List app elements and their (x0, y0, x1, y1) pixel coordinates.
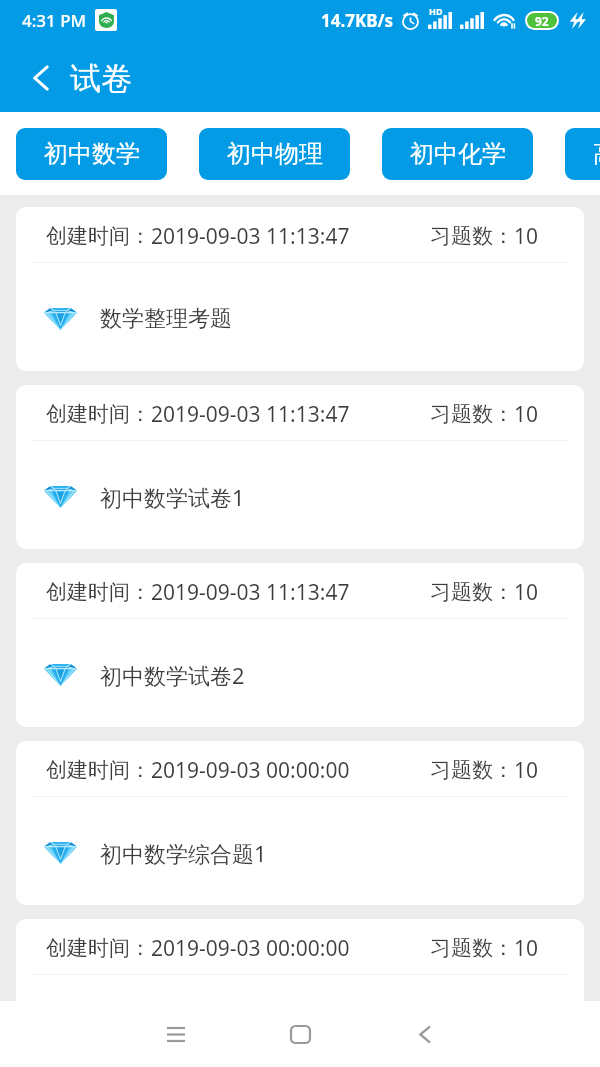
staticText: 创建时间： (46, 401, 151, 427)
button[interactable]: 创建时间： (16, 741, 584, 905)
staticText: 初中数学试卷2 (100, 660, 245, 690)
staticText: 10 (514, 400, 539, 429)
button[interactable]: 创建时间： (16, 385, 584, 549)
staticText: 初中化学 (410, 139, 506, 169)
staticText: 2019-09-03 11:13:47 (151, 578, 350, 607)
button[interactable]: 创建时间： (16, 207, 584, 371)
staticText: 数学整理考题 (100, 305, 232, 333)
staticText: 创建时间： (46, 579, 151, 605)
staticText: 习题数： (430, 579, 514, 605)
staticText: 92 (535, 13, 549, 28)
button[interactable]: 高中数学 (565, 128, 600, 180)
staticText: 2019-09-03 00:00:00 (151, 934, 350, 963)
button[interactable]: 创建时间： (16, 563, 584, 727)
staticText: 初中数学 (44, 139, 140, 169)
staticText: 14.7KB/s (321, 9, 394, 32)
button[interactable]: Back (20, 54, 60, 102)
staticText: 习题数： (430, 757, 514, 783)
button[interactable]: 初中化学 (382, 128, 533, 180)
button[interactable]: 初中数学 (16, 128, 167, 180)
staticText: 高中数学 (593, 139, 600, 169)
staticText: 10 (514, 756, 539, 785)
staticText: 初中物理 (227, 139, 323, 169)
button[interactable]: 初中物理 (199, 128, 350, 180)
staticText: 10 (514, 222, 539, 251)
staticText: 10 (514, 578, 539, 607)
button[interactable]: 创建时间： (16, 919, 584, 1001)
button[interactable]: Back (389, 1006, 459, 1062)
staticText: 创建时间： (46, 935, 151, 961)
staticText: 初中数学试卷1 (100, 482, 245, 512)
staticText: 习题数： (430, 401, 514, 427)
staticText: 初中数学综合题1 (100, 838, 267, 868)
button[interactable]: Recent apps (141, 1006, 211, 1062)
staticText: 10 (514, 934, 539, 963)
staticText: 创建时间： (46, 223, 151, 249)
staticText: 创建时间： (46, 757, 151, 783)
staticText: 试卷 (70, 59, 132, 98)
staticText: 4:31 PM (22, 9, 87, 32)
staticText: 2019-09-03 11:13:47 (151, 400, 350, 429)
staticText: 习题数： (430, 935, 514, 961)
staticText: HD (429, 5, 443, 17)
staticText: 2019-09-03 00:00:00 (151, 756, 350, 785)
staticText: 习题数： (430, 223, 514, 249)
staticText: 2019-09-03 11:13:47 (151, 222, 350, 251)
button[interactable]: Home (265, 1006, 335, 1062)
